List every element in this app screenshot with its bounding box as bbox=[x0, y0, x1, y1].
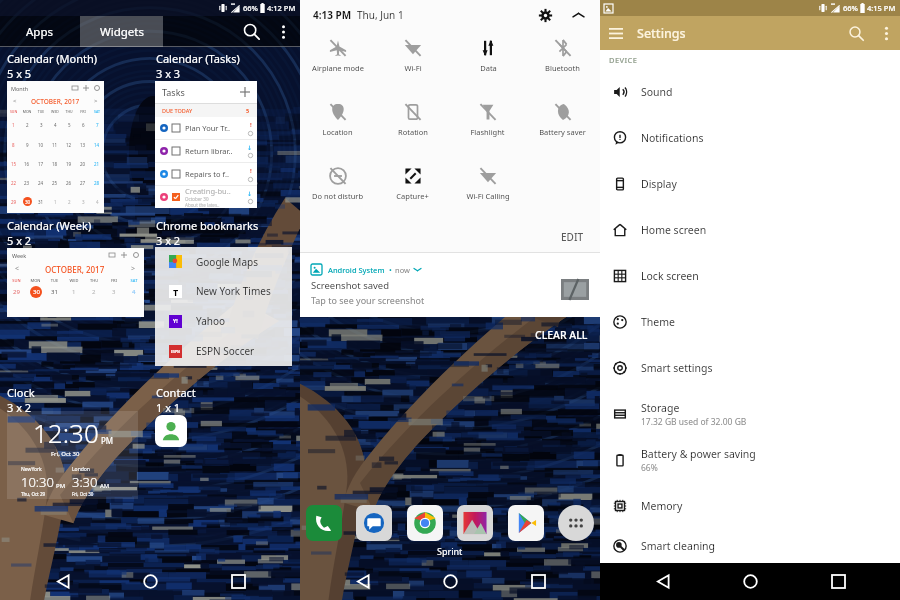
button[interactable]: Week bbox=[7, 248, 144, 317]
button[interactable]: Collapse bbox=[568, 5, 588, 25]
staticText: Bluetooth bbox=[545, 63, 580, 73]
button[interactable]: Wi-Fi Calling bbox=[450, 158, 525, 222]
button[interactable]: Smart settings bbox=[600, 345, 900, 391]
button[interactable]: Month bbox=[7, 81, 104, 213]
button[interactable]: Airplane mode bbox=[300, 30, 375, 94]
button[interactable]: Phone bbox=[306, 505, 342, 541]
button[interactable]: Capture+ bbox=[375, 158, 450, 222]
staticText: Location bbox=[322, 127, 353, 137]
button[interactable]: Back bbox=[638, 563, 688, 600]
button[interactable]: Theme bbox=[600, 299, 900, 345]
button[interactable]: Menu bbox=[600, 17, 632, 49]
staticText: Battery saver bbox=[539, 127, 586, 137]
button[interactable]: Chrome bbox=[407, 505, 443, 541]
button[interactable]: Battery saver bbox=[525, 94, 600, 158]
button[interactable]: Tasks bbox=[155, 81, 257, 208]
staticText: ! bbox=[250, 167, 252, 175]
staticText: Smart cleaning bbox=[641, 539, 716, 553]
staticText: FRI bbox=[104, 278, 124, 283]
button[interactable]: Home bbox=[125, 563, 175, 600]
staticText: Theme bbox=[641, 315, 675, 329]
button[interactable]: Home bbox=[425, 563, 475, 600]
button[interactable]: Sound bbox=[600, 69, 900, 115]
button[interactable]: Notifications bbox=[600, 115, 900, 161]
button[interactable]: Google Maps bbox=[169, 247, 292, 276]
button[interactable]: Home screen bbox=[600, 207, 900, 253]
staticText: 16 bbox=[24, 161, 30, 167]
button[interactable]: Google Maps bbox=[155, 247, 292, 366]
button[interactable]: Smart cleaning bbox=[600, 529, 900, 563]
staticText: Chrome bookmarks bbox=[156, 218, 259, 233]
staticText: 3 x 2 bbox=[7, 400, 32, 415]
staticText: Screenshot saved bbox=[311, 279, 390, 292]
button[interactable]: All apps bbox=[558, 505, 594, 541]
staticText: DEVICE bbox=[609, 55, 638, 65]
button[interactable]: EDIT bbox=[557, 228, 588, 246]
staticText: 17 bbox=[38, 161, 44, 167]
button[interactable]: Settings bbox=[534, 4, 556, 26]
button[interactable]: Storage bbox=[600, 391, 900, 437]
staticText: Tasks bbox=[162, 86, 185, 98]
button[interactable]: Do not disturb bbox=[300, 158, 375, 222]
button[interactable]: ESPN bbox=[169, 336, 292, 366]
staticText: Android System bbox=[328, 265, 385, 275]
button[interactable]: Lock screen bbox=[600, 253, 900, 299]
staticText: 5 bbox=[68, 122, 71, 128]
button[interactable]: Recents bbox=[513, 563, 563, 600]
button[interactable]: 12:30 bbox=[7, 411, 138, 499]
staticText: Creating-bu.. bbox=[185, 186, 231, 196]
button[interactable]: Search bbox=[840, 17, 872, 49]
button[interactable]: Wi-Fi bbox=[375, 30, 450, 94]
button[interactable]: Android System bbox=[300, 253, 600, 317]
button[interactable]: Plan Your Tr.. bbox=[160, 117, 253, 139]
staticText: 12 bbox=[66, 142, 72, 148]
staticText: THU bbox=[62, 109, 76, 114]
button[interactable]: Y! bbox=[169, 306, 292, 336]
staticText: OCTOBER, 2017 bbox=[31, 97, 80, 106]
staticText: Week bbox=[12, 252, 27, 259]
button[interactable]: Search bbox=[236, 16, 267, 47]
button[interactable]: Flashlight bbox=[450, 94, 525, 158]
staticText: Thu, Jun 1 bbox=[357, 8, 404, 22]
staticText: Airplane mode bbox=[312, 63, 364, 73]
staticText: Y! bbox=[173, 318, 178, 325]
staticText: 9 bbox=[26, 142, 29, 148]
button[interactable]: Recents bbox=[813, 563, 863, 600]
button[interactable] bbox=[155, 415, 187, 447]
button[interactable]: Battery & power saving bbox=[600, 437, 900, 483]
staticText: WED bbox=[48, 109, 62, 114]
staticText: SUN bbox=[7, 278, 26, 283]
button[interactable]: Back bbox=[38, 563, 88, 600]
button[interactable]: T bbox=[169, 276, 292, 306]
button[interactable]: More options bbox=[872, 16, 900, 50]
button[interactable]: More options bbox=[267, 16, 300, 47]
staticText: SAT bbox=[90, 109, 104, 114]
button[interactable]: CLEAR ALL bbox=[532, 326, 591, 344]
button[interactable]: Play Store bbox=[508, 505, 544, 541]
staticText: 26 bbox=[66, 180, 72, 186]
button[interactable]: Messages bbox=[356, 505, 392, 541]
button[interactable]: Back bbox=[338, 563, 388, 600]
button[interactable]: Recents bbox=[213, 563, 263, 600]
button[interactable]: Widgets bbox=[80, 16, 163, 47]
button[interactable]: Creating-bu.. bbox=[160, 186, 253, 208]
button[interactable]: Rotation bbox=[375, 94, 450, 158]
staticText: now bbox=[395, 265, 410, 275]
staticText: 4:15 PM bbox=[867, 3, 896, 13]
button[interactable]: Repairs to f.. bbox=[160, 163, 253, 185]
button[interactable]: Apps bbox=[0, 16, 80, 47]
staticText: Plan Your Tr.. bbox=[185, 123, 231, 133]
staticText: New York Times bbox=[196, 284, 271, 298]
button[interactable]: Memory bbox=[600, 483, 900, 529]
button[interactable]: Home bbox=[725, 563, 775, 600]
staticText: Clock bbox=[7, 385, 35, 400]
button[interactable]: Bluetooth bbox=[525, 30, 600, 94]
staticText: Smart settings bbox=[641, 361, 713, 375]
button[interactable]: Display bbox=[600, 161, 900, 207]
button[interactable]: Location bbox=[300, 94, 375, 158]
staticText: 7 bbox=[96, 122, 99, 128]
button[interactable]: Data bbox=[450, 30, 525, 94]
button[interactable]: Return librar.. bbox=[160, 140, 253, 162]
button[interactable]: Photos bbox=[457, 505, 493, 541]
staticText: 29 bbox=[11, 199, 17, 205]
